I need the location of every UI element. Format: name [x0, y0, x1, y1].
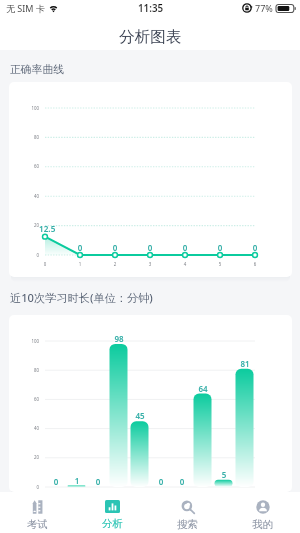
staticText: 0: [17, 484, 39, 490]
staticText: 无 SIM 卡: [6, 2, 45, 14]
staticText: 4: [178, 261, 192, 267]
staticText: 5: [214, 469, 234, 480]
staticText: 分析: [102, 517, 123, 530]
staticText: 0: [247, 242, 263, 253]
staticText: 60: [17, 163, 39, 169]
staticText: 近10次学习时长(单位：分钟): [10, 290, 153, 305]
staticText: 正确率曲线: [10, 63, 64, 77]
button[interactable]: 我的: [225, 492, 300, 533]
staticText: 100: [17, 338, 39, 344]
staticText: 20: [17, 454, 39, 460]
other: 考试: [31, 500, 44, 514]
staticText: 0: [88, 476, 108, 487]
staticText: 0: [151, 476, 171, 487]
staticText: 12.5: [39, 223, 69, 234]
staticText: 考试: [27, 518, 48, 531]
staticText: 80: [17, 134, 39, 140]
staticText: 搜索: [177, 518, 198, 531]
staticText: 77%: [255, 2, 273, 14]
staticText: 0: [38, 261, 52, 267]
staticText: 40: [17, 193, 39, 199]
staticText: 60: [17, 396, 39, 402]
staticText: 0: [107, 242, 123, 253]
staticText: 0: [142, 242, 158, 253]
staticText: 3: [143, 261, 157, 267]
staticText: 5: [213, 261, 227, 267]
staticText: 1: [67, 475, 87, 486]
staticText: 0: [72, 242, 88, 253]
staticText: 1: [73, 261, 87, 267]
other: 分析: [105, 500, 120, 513]
other: 搜索: [181, 500, 195, 514]
button[interactable]: 考试: [0, 492, 75, 533]
staticText: 98: [109, 333, 129, 344]
staticText: 80: [17, 367, 39, 373]
staticText: 6: [248, 261, 262, 267]
staticText: 20: [17, 222, 39, 228]
staticText: 分析图表: [119, 27, 182, 47]
button[interactable]: 分析: [75, 492, 150, 533]
staticText: 2: [108, 261, 122, 267]
staticText: 0: [46, 476, 66, 487]
staticText: 0: [17, 252, 39, 258]
staticText: 100: [17, 105, 39, 111]
staticText: 11:35: [138, 2, 164, 15]
staticText: 81: [235, 358, 255, 369]
other: 我的: [256, 500, 270, 514]
staticText: 0: [212, 242, 228, 253]
staticText: 0: [172, 476, 192, 487]
staticText: 0: [177, 242, 193, 253]
staticText: 64: [193, 383, 213, 394]
staticText: 我的: [252, 518, 273, 531]
staticText: 40: [17, 425, 39, 431]
button[interactable]: 搜索: [150, 492, 225, 533]
staticText: 45: [130, 410, 150, 421]
